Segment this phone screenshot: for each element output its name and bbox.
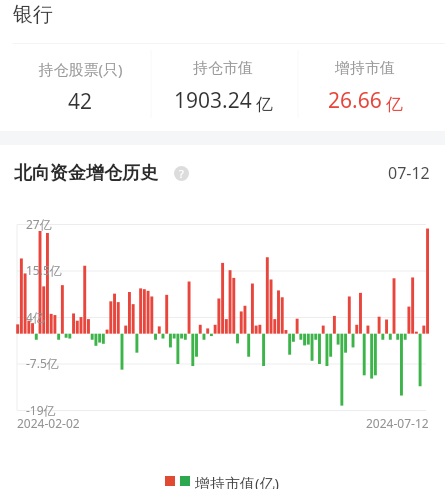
staticText: -19亿 [26,402,56,418]
staticText: 增持市值(亿) [195,473,280,489]
staticText: 北向资金增仓历史 [14,162,158,185]
staticText: 07-12 [388,162,430,184]
button[interactable]: 持仓市值 [152,44,294,115]
staticText: -7.5亿 [26,355,59,371]
staticText: 亿 [386,94,403,115]
staticText: 26.66 [328,86,382,115]
staticText: 4亿 [26,309,45,325]
staticText: 银行 [13,2,53,27]
staticText: 42 [68,87,93,116]
button[interactable]: 增持市值 [294,44,436,115]
staticText: 持仓股票(只) [38,59,123,79]
staticText: 2024-07-12 [366,415,429,430]
button[interactable]: 持仓股票(只) [9,44,152,116]
staticText: 1903.24 [174,86,252,115]
staticText: 15.5亿 [26,262,62,278]
staticText: 增持市值 [335,59,395,78]
staticText: 持仓市值 [193,59,253,78]
staticText: 2024-02-02 [17,415,80,430]
staticText: 亿 [256,94,273,115]
staticText: 27亿 [26,216,52,232]
staticText: ? [179,166,184,181]
button[interactable]: 帮助说明 [174,166,189,181]
